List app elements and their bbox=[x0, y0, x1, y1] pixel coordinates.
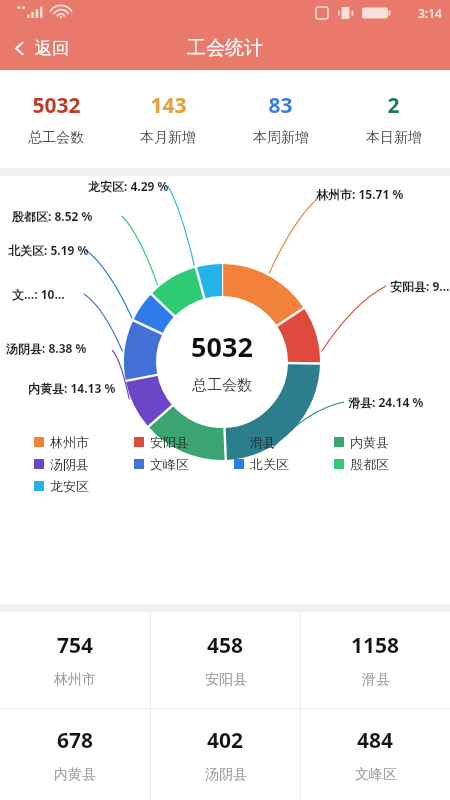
staticText: 滑县 bbox=[250, 434, 276, 450]
button[interactable]: 滑县 bbox=[234, 434, 334, 450]
staticText: 返回 bbox=[35, 38, 69, 59]
staticText: 484 bbox=[357, 726, 394, 755]
staticText: 754 bbox=[57, 631, 94, 660]
staticText: 458 bbox=[207, 631, 244, 660]
staticText: 安阳县 bbox=[205, 671, 247, 689]
staticText: 内黄县: 14.13 % bbox=[28, 380, 116, 396]
staticText: 殷都区 bbox=[350, 456, 389, 472]
button[interactable]: 汤阴县 bbox=[34, 456, 134, 472]
staticText: 5032 bbox=[32, 91, 81, 120]
staticText: 汤阴县 bbox=[50, 456, 89, 472]
staticText: 本周新增 bbox=[253, 129, 309, 147]
button[interactable]: 678 bbox=[0, 709, 150, 800]
staticText: 143 bbox=[150, 91, 187, 120]
button[interactable]: 754 bbox=[0, 612, 150, 708]
staticText: 3:14 bbox=[418, 5, 442, 21]
staticText: 林州市 bbox=[50, 434, 89, 450]
staticText: 文峰区 bbox=[355, 766, 397, 784]
staticText: 5032 bbox=[191, 328, 253, 365]
staticText: 总工会数 bbox=[192, 376, 252, 395]
button[interactable]: 北关区 bbox=[234, 456, 334, 472]
staticText: 1158 bbox=[351, 631, 400, 660]
staticText: 滑县: 24.14 % bbox=[348, 394, 424, 410]
staticText: 文峰区 bbox=[150, 456, 189, 472]
staticText: 殷都区: 8.52 % bbox=[12, 208, 93, 224]
staticText: 文…: 10… bbox=[12, 286, 65, 302]
staticText: 402 bbox=[207, 726, 244, 755]
button[interactable]: 文峰区 bbox=[134, 456, 234, 472]
staticText: 北关区 bbox=[250, 456, 289, 472]
staticText: 83 bbox=[268, 91, 293, 120]
staticText: 龙安区 bbox=[50, 478, 89, 494]
button[interactable]: 143 bbox=[112, 70, 224, 168]
staticText: 工会统计 bbox=[187, 36, 263, 60]
staticText: 安阳县: 9… bbox=[390, 278, 450, 294]
button[interactable]: 458 bbox=[151, 612, 300, 708]
button[interactable]: 484 bbox=[301, 709, 450, 800]
button[interactable]: 5032 bbox=[0, 70, 112, 168]
button[interactable]: 402 bbox=[151, 709, 300, 800]
staticText: 2 bbox=[387, 91, 400, 120]
button[interactable]: 83 bbox=[224, 70, 337, 168]
staticText: 龙安区: 4.29 % bbox=[88, 178, 169, 194]
staticText: 内黄县 bbox=[54, 766, 96, 784]
button[interactable]: Back bbox=[0, 30, 83, 67]
staticText: 北关区: 5.19 % bbox=[8, 242, 89, 258]
button[interactable]: 1158 bbox=[301, 612, 450, 708]
button[interactable]: 林州市 bbox=[34, 434, 134, 450]
staticText: 安阳县 bbox=[150, 434, 189, 450]
button[interactable]: 安阳县 bbox=[134, 434, 234, 450]
button[interactable]: 2 bbox=[337, 70, 450, 168]
staticText: 本日新增 bbox=[366, 129, 422, 147]
button[interactable]: 内黄县 bbox=[334, 434, 434, 450]
staticText: 林州市: 15.71 % bbox=[316, 186, 404, 202]
staticText: 内黄县 bbox=[350, 434, 389, 450]
staticText: 林州市 bbox=[54, 671, 96, 689]
staticText: 汤阴县: 8.38 % bbox=[6, 340, 87, 356]
staticText: 总工会数 bbox=[28, 129, 84, 147]
button[interactable]: 殷都区 bbox=[334, 456, 434, 472]
staticText: 本月新增 bbox=[140, 129, 196, 147]
staticText: 678 bbox=[57, 726, 94, 755]
button[interactable]: 龙安区 bbox=[34, 478, 134, 494]
staticText: 汤阴县 bbox=[205, 766, 247, 784]
staticText: 滑县 bbox=[362, 671, 390, 689]
other: Back bbox=[12, 41, 27, 56]
